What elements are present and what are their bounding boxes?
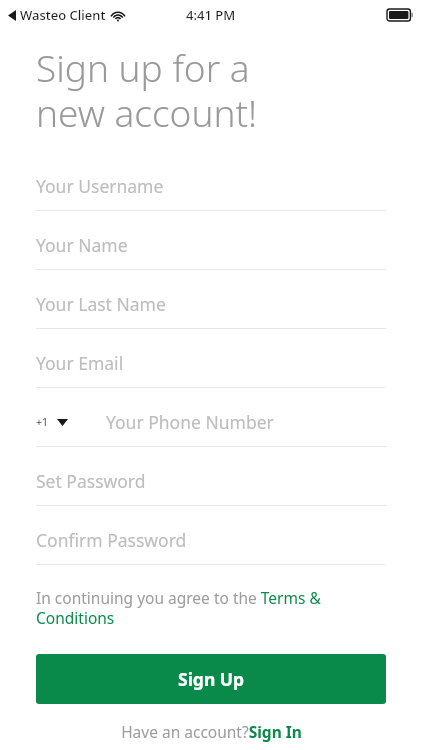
staticText: Confirm Password [36, 528, 187, 552]
staticText: Have an account?Sign In [121, 721, 302, 742]
staticText: Your Email [36, 351, 124, 375]
button[interactable]: Set Password [36, 457, 386, 506]
button[interactable]: Your Phone Number [106, 410, 386, 434]
button[interactable]: Your Email [36, 339, 386, 388]
staticText: Sign up for a new account! [36, 42, 258, 138]
staticText: Your Username [36, 174, 164, 198]
staticText: Wasteo Client [20, 6, 106, 24]
staticText: Your Phone Number [106, 410, 274, 434]
button[interactable]: Your Name [36, 221, 386, 270]
staticText: +1 [36, 415, 49, 429]
button[interactable]: Confirm Password [36, 516, 386, 565]
staticText: 4:41 PM [186, 6, 236, 24]
staticText: Your Last Name [36, 292, 166, 316]
button[interactable]: Sign Up [36, 654, 386, 704]
staticText: Set Password [36, 469, 146, 493]
button[interactable]: In continuing you agree to the Terms & C… [36, 587, 386, 629]
button[interactable]: Select country code [36, 415, 74, 429]
staticText: Sign Up [178, 667, 245, 691]
button[interactable]: Your Username [36, 162, 386, 211]
staticText: Your Name [36, 233, 128, 257]
button[interactable]: Your Last Name [36, 280, 386, 329]
button[interactable]: Have an account?Sign In [36, 721, 386, 742]
